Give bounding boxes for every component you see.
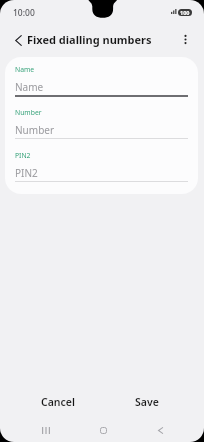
button[interactable]: PIN2 xyxy=(15,151,188,185)
staticText: PIN2 xyxy=(15,166,38,180)
staticText: Number xyxy=(15,108,42,117)
button[interactable]: Save xyxy=(117,389,177,415)
button[interactable]: Back xyxy=(145,419,175,441)
staticText: Name xyxy=(15,65,35,74)
button[interactable]: Name xyxy=(15,65,188,99)
staticText: PIN2 xyxy=(15,151,31,160)
button[interactable]: More options xyxy=(174,28,196,50)
staticText: Cancel xyxy=(41,395,75,409)
staticText: Save xyxy=(135,395,159,409)
staticText: Number xyxy=(15,123,55,137)
staticText: Name xyxy=(15,80,44,94)
button[interactable]: Home xyxy=(88,419,118,441)
staticText: 100 xyxy=(180,9,190,16)
button[interactable]: Number xyxy=(15,108,188,142)
staticText: Fixed dialling numbers xyxy=(27,32,152,47)
button[interactable]: Navigate up xyxy=(7,29,29,51)
button[interactable]: Cancel xyxy=(28,389,88,415)
button[interactable]: Recent apps xyxy=(31,419,61,441)
staticText: 10:00 xyxy=(13,7,35,19)
